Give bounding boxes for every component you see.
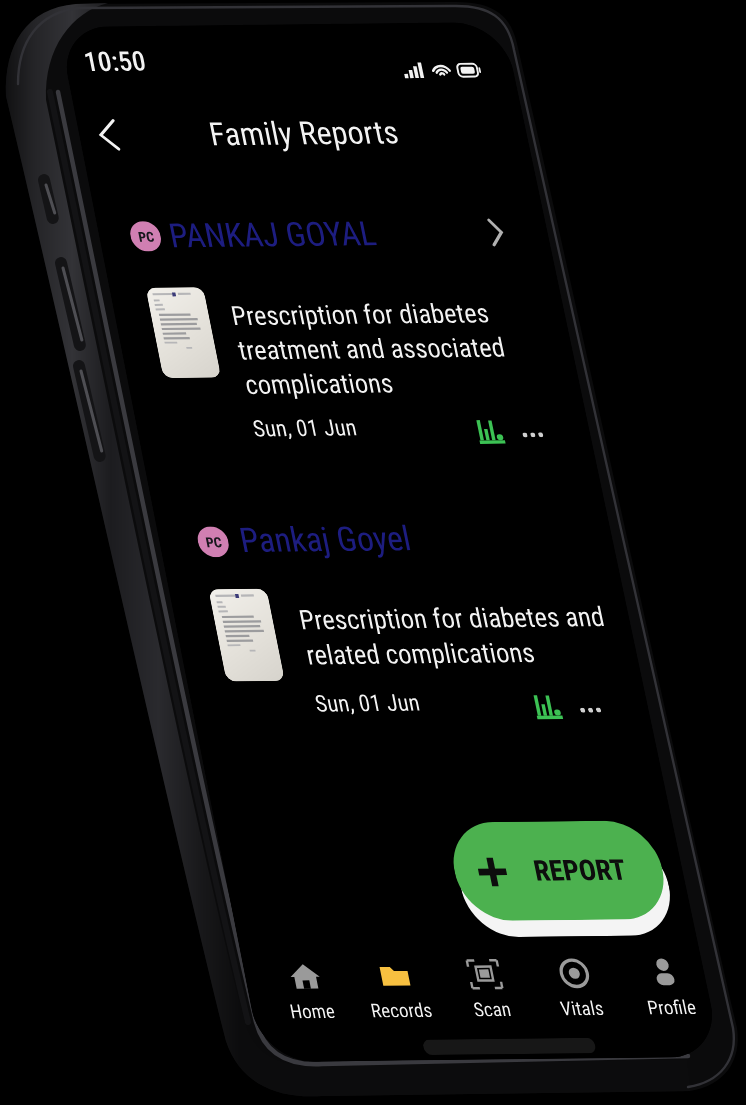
staticText: Family Reports [134,93,328,132]
button[interactable]: Scan [195,934,285,998]
staticText: complications [119,353,270,385]
staticText: PANKAJ GOYAL [72,196,284,236]
button[interactable]: Back [4,86,56,138]
staticText: Vitals [309,980,352,998]
button[interactable]: Prescription preview [37,269,96,361]
button[interactable]: Trends [343,680,375,708]
staticText: Pankaj Goyel [82,505,256,545]
button[interactable]: Profile [375,934,460,998]
staticText: PC [40,209,56,225]
button[interactable]: More options [388,687,414,709]
staticText: 10:50 [20,20,84,53]
staticText: treatment and associated [119,318,392,350]
staticText: Sun, 01 Jun [118,400,224,427]
button[interactable]: Vitals [285,934,375,998]
staticText: Prescription for diabetes and [126,590,435,622]
staticText: related complications [126,625,357,657]
button[interactable]: PC [33,503,433,549]
button[interactable]: Trends [343,404,375,432]
staticText: Profile [396,980,445,998]
staticText: Sun, 01 Jun [125,676,231,703]
staticText: Prescription for diabetes [119,283,383,315]
staticText: Scan [222,980,259,998]
button[interactable]: PC [26,193,426,239]
